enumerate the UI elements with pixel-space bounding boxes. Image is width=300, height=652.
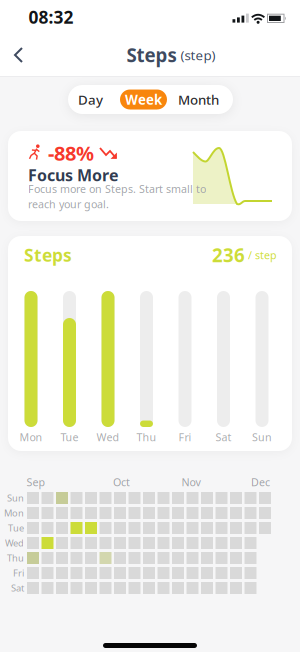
staticText: reach your goal.: [28, 197, 109, 211]
staticText: Steps: [24, 243, 72, 266]
staticText: Focus more on Steps. Start small to: [28, 182, 206, 196]
staticText: Fri: [178, 430, 191, 444]
button[interactable]: Week: [120, 89, 167, 109]
staticText: Sat: [11, 582, 24, 594]
staticText: Tue: [8, 522, 24, 534]
staticText: Wed: [96, 430, 119, 444]
staticText: 08:32: [28, 5, 73, 28]
staticText: Dec: [251, 475, 270, 489]
staticText: Fri: [13, 567, 24, 579]
staticText: Mon: [19, 430, 42, 444]
staticText: Sep: [26, 475, 45, 489]
staticText: Tue: [60, 430, 78, 444]
staticText: Oct: [113, 475, 130, 489]
button[interactable]: Day: [68, 85, 112, 114]
staticText: (step): [180, 46, 215, 64]
staticText: Wed: [5, 537, 24, 549]
staticText: Thu: [7, 552, 24, 564]
staticText: Nov: [181, 475, 200, 489]
staticText: Sat: [215, 430, 231, 444]
button[interactable]: Back: [10, 44, 34, 66]
staticText: Sun: [7, 492, 24, 504]
staticText: 236: [212, 243, 245, 267]
staticText: Day: [78, 91, 103, 108]
staticText: Thu: [136, 430, 156, 444]
staticText: Month: [178, 91, 219, 108]
staticText: Focus More: [28, 164, 119, 186]
staticText: Week: [125, 91, 162, 108]
staticText: / step: [248, 248, 277, 262]
staticText: Sun: [252, 430, 272, 444]
button[interactable]: Month: [172, 85, 224, 114]
staticText: Steps: [126, 43, 176, 67]
staticText: -88%: [48, 140, 94, 166]
staticText: Mon: [4, 507, 24, 519]
